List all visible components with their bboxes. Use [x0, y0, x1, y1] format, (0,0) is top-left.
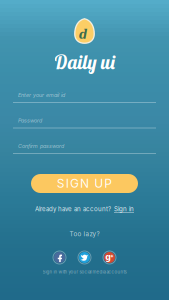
button[interactable]: Already have an account?: [0, 203, 169, 215]
button[interactable]: SIGN UP: [31, 174, 138, 193]
staticText: Confirm password: [18, 143, 64, 149]
staticText: Enter your email id: [18, 92, 65, 98]
staticText: g: [105, 253, 111, 262]
button[interactable]: Enter your email id: [13, 88, 156, 103]
staticText: Password: [18, 117, 42, 124]
button[interactable]: Sign in with Facebook: [52, 250, 67, 265]
staticText: SIGN UP: [57, 176, 112, 191]
staticText: Daily ui: [53, 50, 115, 74]
button[interactable]: Sign in with Twitter: [77, 250, 92, 265]
staticText: Sign in with your social media accounts: [42, 269, 126, 275]
staticText: d: [79, 28, 87, 42]
button[interactable]: Sign in with Google Plus: [102, 250, 117, 265]
staticText: Too lazy?: [69, 230, 99, 238]
staticText: Already have an account?: [35, 205, 111, 213]
button[interactable]: Confirm password: [13, 139, 156, 154]
staticText: Sign in: [114, 205, 134, 213]
button[interactable]: Password: [13, 113, 156, 128]
